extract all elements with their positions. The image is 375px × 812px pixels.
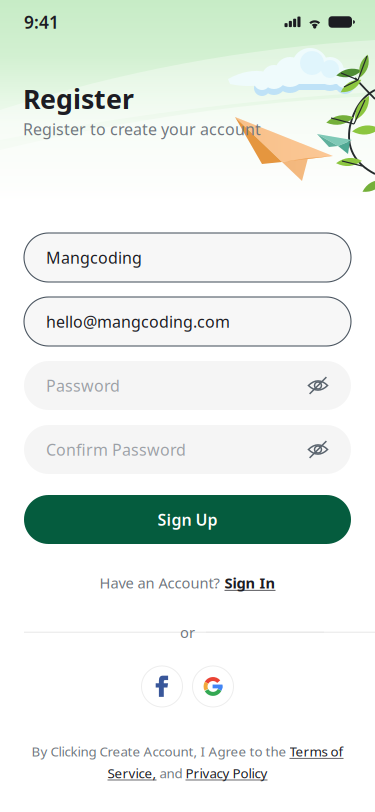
staticText: and [156,764,185,782]
button[interactable]: Sign up with Facebook [141,666,182,707]
staticText: By Clicking Create Account, I Agree to t… [31,743,289,760]
staticText: Privacy Policy [185,764,267,782]
staticText: Have an Account? [99,573,219,592]
staticText: Mangcoding [46,247,142,268]
staticText: hello@mangcoding.com [46,311,230,332]
button[interactable]: Sign up with Google [192,666,233,707]
staticText: Terms of [289,743,343,760]
button[interactable]: Have an Account? [87,567,287,598]
button[interactable]: Show Confirm Password [307,438,329,460]
button[interactable]: Show Password [307,374,329,396]
staticText: Sign Up [157,509,217,530]
button[interactable]: Mangcoding [24,233,351,282]
button[interactable]: Sign Up [24,495,351,544]
staticText: Confirm Password [46,439,186,460]
button[interactable]: hello@mangcoding.com [24,297,351,346]
staticText: 9:41 [24,10,59,33]
staticText: Register [23,81,134,116]
staticText: Service, [107,764,156,782]
staticText: Sign In [224,573,275,592]
staticText: Password [46,375,120,396]
staticText: Register to create your account [23,118,261,140]
staticText: or [180,622,195,642]
